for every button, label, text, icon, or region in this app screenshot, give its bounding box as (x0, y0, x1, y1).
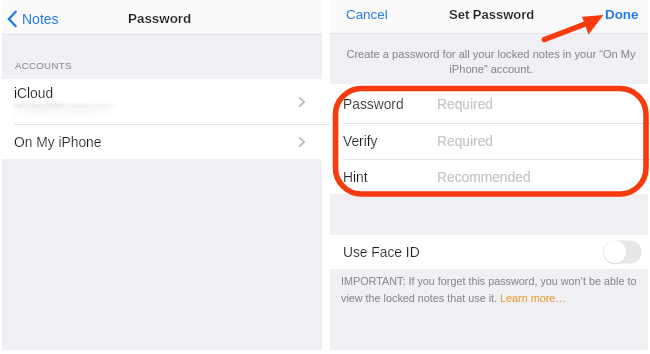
staticText: Use Face ID (343, 245, 420, 260)
button[interactable]: Verify (330, 124, 648, 159)
staticText: Verify (343, 134, 378, 149)
button[interactable]: Notes (7, 9, 59, 27)
staticText: Password (343, 97, 404, 112)
button[interactable]: Password (330, 84, 648, 123)
staticText: Set Password (449, 7, 535, 22)
button[interactable]: iCloud (2, 79, 322, 124)
staticText: Required (437, 134, 493, 149)
button[interactable]: Use Face ID (330, 235, 648, 269)
staticText: Password (128, 11, 192, 26)
staticText: Recommended (437, 170, 531, 185)
staticText: On My iPhone (14, 135, 102, 150)
staticText: Hint (343, 170, 368, 185)
staticText: Create a password for all your locked no… (341, 48, 641, 75)
staticText: Notes (22, 11, 59, 27)
staticText: ACCOUNTS (15, 60, 72, 71)
button[interactable]: Cancel (346, 7, 388, 22)
staticText: Required (437, 97, 493, 112)
button[interactable]: Use Face ID toggle (603, 240, 642, 264)
button[interactable]: On My iPhone (2, 125, 322, 159)
button[interactable]: Done (605, 7, 639, 22)
button[interactable]: Hint (330, 160, 648, 194)
staticText: iCloud (14, 86, 54, 101)
staticText: IMPORTANT: If you forget this password, … (341, 275, 641, 304)
